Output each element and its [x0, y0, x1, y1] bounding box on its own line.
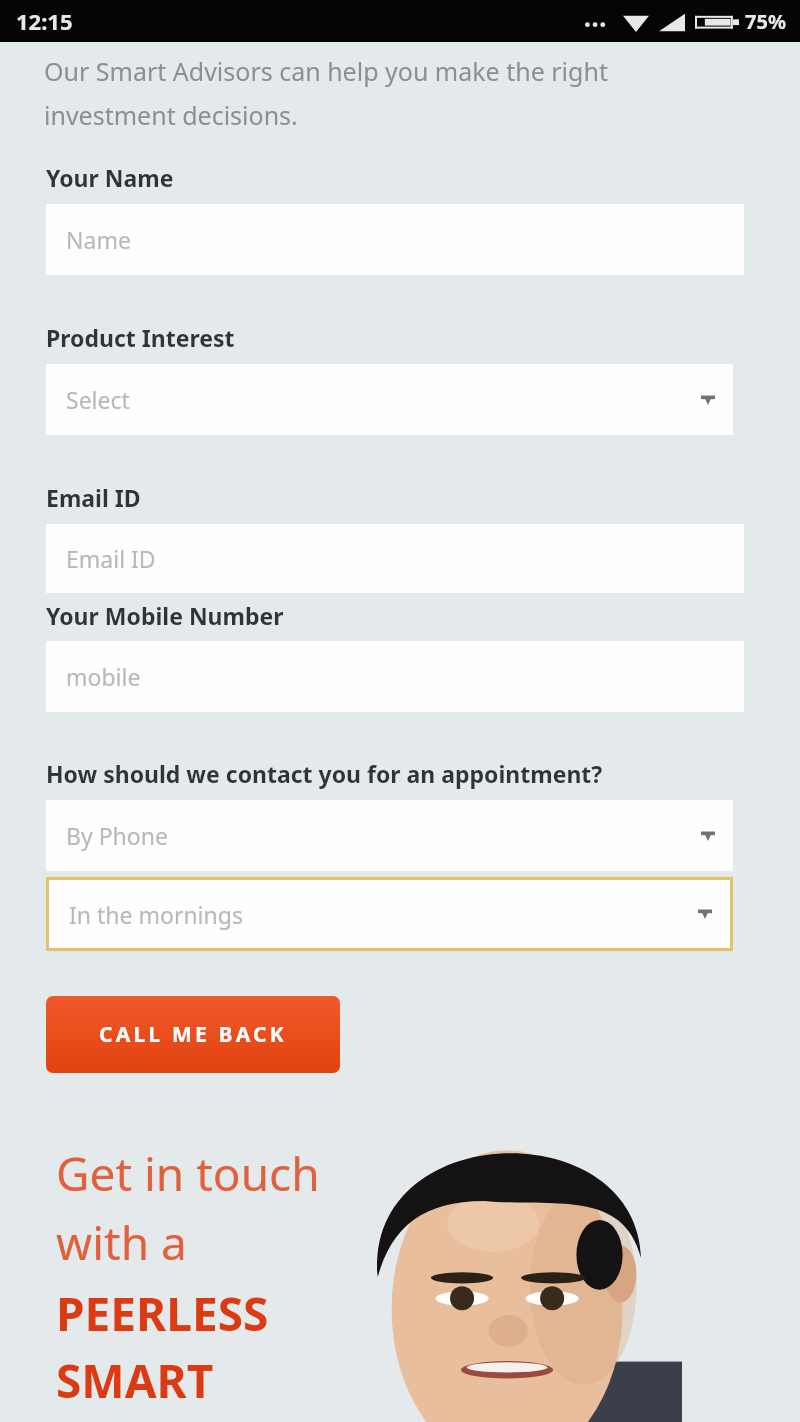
other: Open dropdown	[701, 829, 715, 843]
staticText: CALL ME BACK	[99, 1020, 287, 1049]
button[interactable]: Name	[46, 204, 744, 275]
staticText: 75%	[745, 8, 786, 35]
staticText: In the mornings	[69, 899, 243, 930]
staticText: Select	[66, 384, 130, 415]
button[interactable]: CALL ME BACK	[46, 996, 340, 1073]
button[interactable]: By Phone	[46, 800, 733, 871]
staticText: Our Smart Advisors can help you make the…	[44, 54, 608, 88]
button[interactable]: In the mornings	[49, 880, 730, 948]
staticText: Your Name	[46, 162, 174, 193]
staticText: By Phone	[66, 820, 168, 851]
staticText: with a	[56, 1211, 187, 1274]
staticText: investment decisions.	[44, 98, 298, 132]
staticText: Email ID	[46, 482, 141, 513]
staticText: SMART	[56, 1349, 214, 1412]
staticText: Your Mobile Number	[46, 600, 284, 631]
staticText: Email ID	[66, 543, 156, 574]
staticText: Name	[66, 224, 131, 255]
staticText: 12:15	[16, 6, 73, 36]
other: Open dropdown	[701, 393, 715, 407]
staticText: Get in touch	[56, 1142, 320, 1205]
staticText: mobile	[66, 661, 141, 692]
staticText: PEERLESS	[56, 1282, 269, 1345]
button[interactable]: mobile	[46, 641, 744, 712]
other: Smart advisor portrait	[352, 1120, 682, 1422]
button[interactable]: Select	[46, 364, 733, 435]
button[interactable]: Email ID	[46, 524, 744, 593]
other: Open dropdown	[698, 907, 712, 921]
staticText: How should we contact you for an appoint…	[46, 758, 603, 789]
staticText: Product Interest	[46, 322, 235, 353]
